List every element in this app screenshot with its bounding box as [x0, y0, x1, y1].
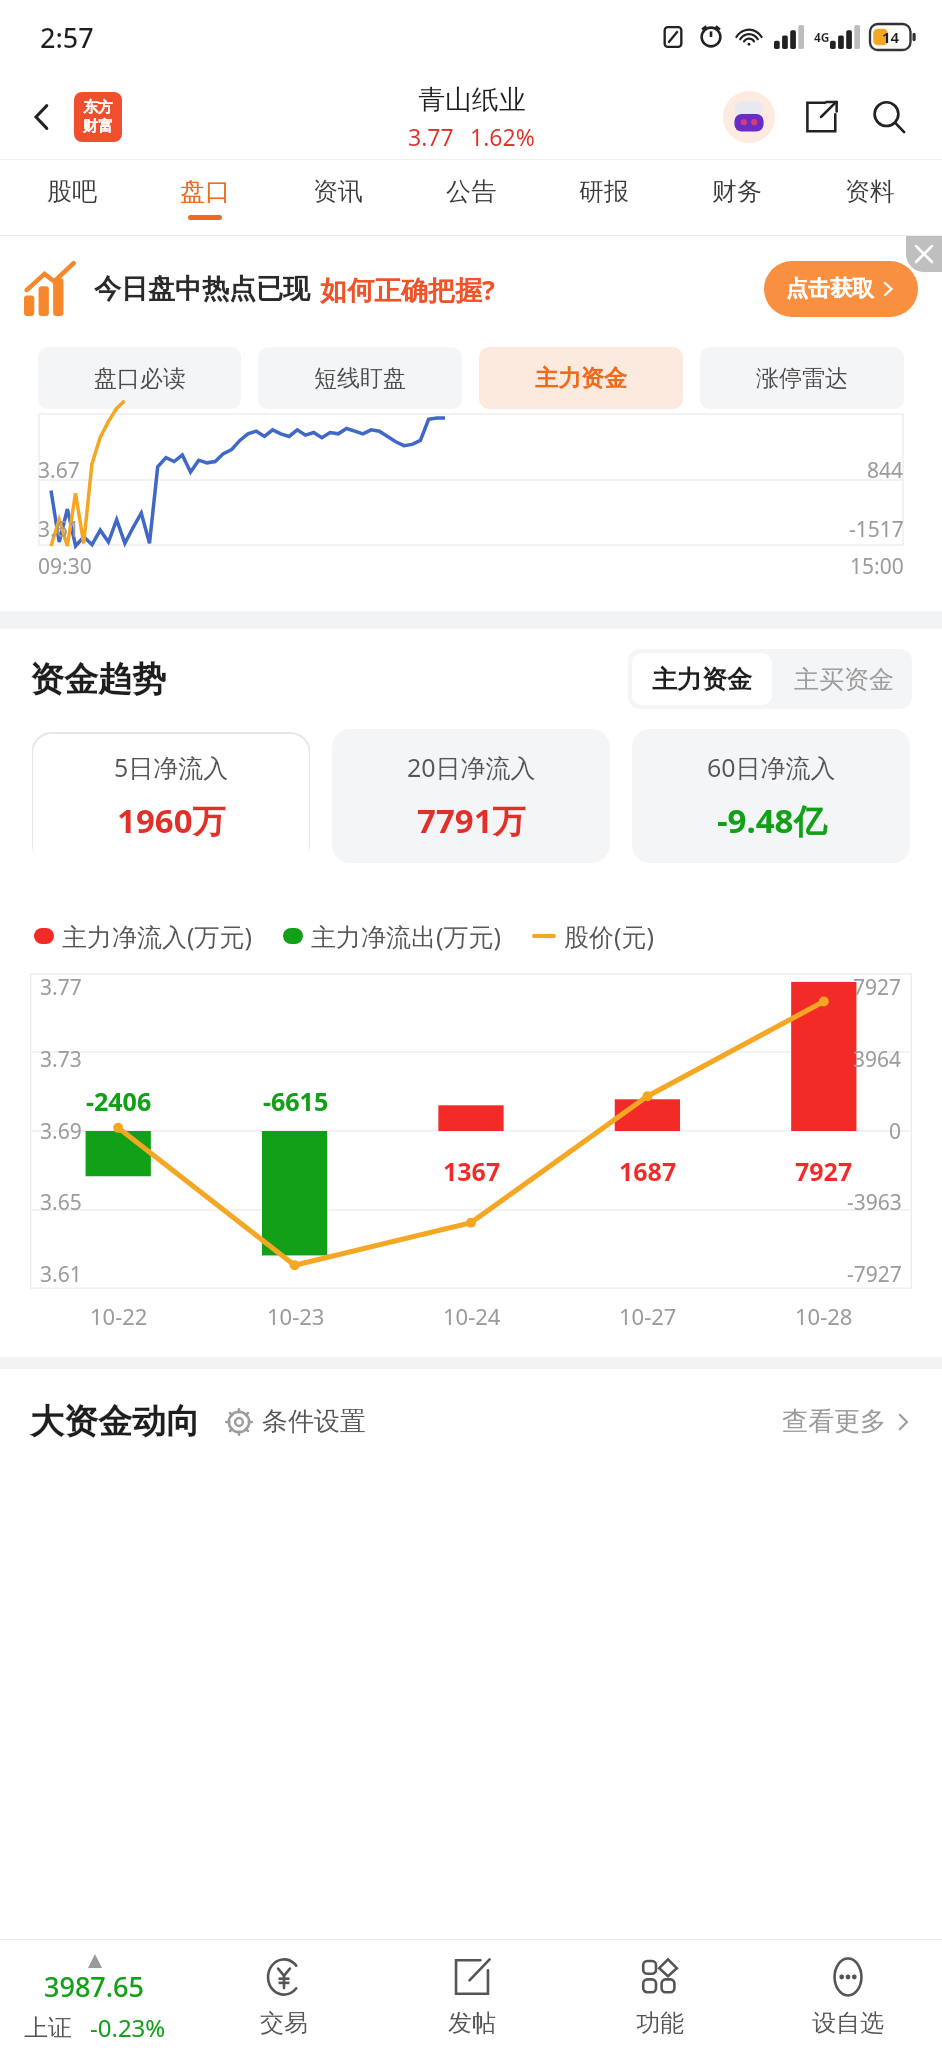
button[interactable]: Share [792, 88, 850, 146]
staticText: 发帖 [448, 2008, 496, 2038]
staticText: 4G [814, 29, 830, 45]
button[interactable]: 股吧 [6, 160, 138, 236]
button[interactable]: 主力资金 [632, 653, 772, 705]
staticText: -7927 [847, 1260, 902, 1289]
staticText: 3.65 [40, 1188, 82, 1217]
button[interactable]: 短线盯盘 [258, 347, 462, 409]
staticText: 10-22 [90, 1301, 148, 1331]
button[interactable]: Search [860, 88, 918, 146]
button[interactable]: 20日净流入 [332, 729, 610, 863]
staticText: 主力净流出(万元) [311, 919, 502, 953]
staticText: 主力资金 [652, 664, 752, 695]
button[interactable]: 涨停雷达 [700, 347, 904, 409]
button[interactable]: 主买资金 [776, 649, 912, 709]
staticText: 2:57 [40, 19, 94, 56]
staticText: 1.62% [470, 121, 535, 152]
staticText: 如何正确把握? [320, 271, 495, 308]
staticText: 研报 [579, 176, 629, 207]
staticText: 盘口必读 [94, 364, 186, 393]
button[interactable]: 5日净流入 [32, 729, 310, 863]
staticText: 1960万 [117, 798, 226, 843]
staticText: 盘口 [180, 176, 230, 207]
staticText: 主买资金 [794, 664, 894, 695]
staticText: 60日净流入 [707, 750, 836, 784]
button[interactable]: AI assistant [720, 88, 778, 146]
button[interactable]: East Money [74, 92, 122, 142]
staticText: 3.69 [40, 1117, 82, 1146]
button[interactable]: 公告 [404, 160, 537, 236]
staticText: 上证 [24, 2013, 72, 2043]
staticText: 设自选 [812, 2008, 884, 2038]
button[interactable]: 条件设置 [224, 1405, 366, 1438]
button[interactable]: 交易 [189, 1940, 378, 2070]
staticText: 资料 [845, 176, 895, 207]
staticText: -2406 [86, 1084, 152, 1118]
staticText: 短线盯盘 [314, 364, 406, 393]
staticText: 财富 [83, 117, 113, 136]
button[interactable]: Back [14, 89, 70, 145]
staticText: 3964 [853, 1045, 902, 1074]
staticText: 0 [889, 1117, 902, 1146]
staticText: 查看更多 [782, 1405, 886, 1438]
staticText: 10-24 [443, 1301, 501, 1331]
staticText: 10-27 [619, 1301, 677, 1331]
button[interactable]: 主力资金 [479, 347, 683, 409]
button[interactable]: 盘口必读 [38, 347, 241, 409]
staticText: 15:00 [850, 552, 904, 581]
staticText: 资讯 [313, 176, 363, 207]
staticText: 844 [867, 456, 904, 485]
staticText: 主力资金 [535, 364, 627, 393]
staticText: 大资金动向 [30, 1400, 200, 1443]
staticText: 3.77 [408, 121, 454, 152]
button[interactable]: 功能 [566, 1940, 754, 2070]
button[interactable]: 设自选 [754, 1940, 942, 2070]
staticText: -6615 [263, 1084, 329, 1118]
staticText: 3.77 [40, 973, 82, 1002]
staticText: 10-23 [267, 1301, 325, 1331]
staticText: 涨停雷达 [756, 364, 848, 393]
staticText: 1687 [619, 1154, 677, 1188]
staticText: 1367 [443, 1154, 501, 1188]
staticText: -9.48亿 [717, 798, 827, 843]
staticText: 3.67 [38, 456, 80, 485]
staticText: -0.23% [90, 2011, 166, 2044]
staticText: 股吧 [47, 176, 97, 207]
staticText: 20日净流入 [407, 750, 536, 784]
staticText: 点击获取 [786, 275, 874, 303]
button[interactable]: 财务 [670, 160, 803, 236]
button[interactable]: 60日净流入 [632, 729, 910, 863]
staticText: -3963 [847, 1188, 902, 1217]
staticText: -1517 [849, 515, 904, 544]
staticText: 7927 [853, 973, 902, 1002]
staticText: 主力净流入(万元) [62, 919, 253, 953]
staticText: 青山纸业 [418, 83, 526, 117]
staticText: 3.73 [40, 1045, 82, 1074]
staticText: 东方 [83, 98, 113, 117]
staticText: 功能 [636, 2008, 684, 2038]
staticText: 交易 [260, 2008, 308, 2038]
button[interactable]: 点击获取 [764, 261, 918, 317]
staticText: 今日盘中热点已现 [94, 272, 310, 306]
staticText: 财务 [712, 176, 762, 207]
staticText: 公告 [446, 176, 496, 207]
button[interactable]: 研报 [537, 160, 670, 236]
staticText: 09:30 [38, 552, 92, 581]
staticText: 14 [882, 27, 900, 47]
staticText: 3987.65 [44, 1968, 145, 2005]
staticText: 资金趋势 [30, 658, 166, 701]
staticText: 7927 [795, 1154, 853, 1188]
staticText: 3.61 [38, 515, 80, 544]
button[interactable]: 资讯 [271, 160, 404, 236]
staticText: 10-28 [795, 1301, 853, 1331]
staticText: 7791万 [417, 798, 526, 843]
staticText: 3.61 [40, 1260, 82, 1289]
button[interactable]: 资料 [803, 160, 936, 236]
staticText: 股价(元) [564, 919, 655, 953]
button[interactable]: 发帖 [378, 1940, 566, 2070]
staticText: 5日净流入 [114, 750, 229, 784]
button[interactable]: 查看更多 [782, 1405, 912, 1438]
button[interactable]: 盘口 [138, 160, 271, 236]
button[interactable]: Close [906, 236, 942, 272]
staticText: 条件设置 [262, 1405, 366, 1438]
